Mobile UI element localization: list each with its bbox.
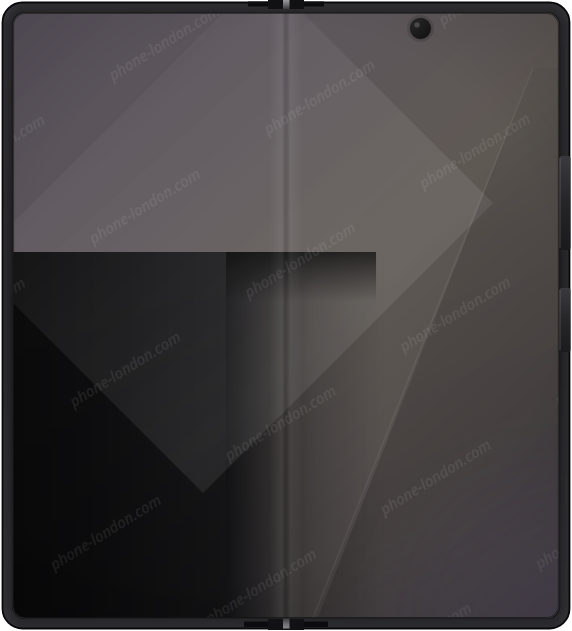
button[interactable]: Galaxy Z Fold unfolded device render — [0, 0, 572, 631]
